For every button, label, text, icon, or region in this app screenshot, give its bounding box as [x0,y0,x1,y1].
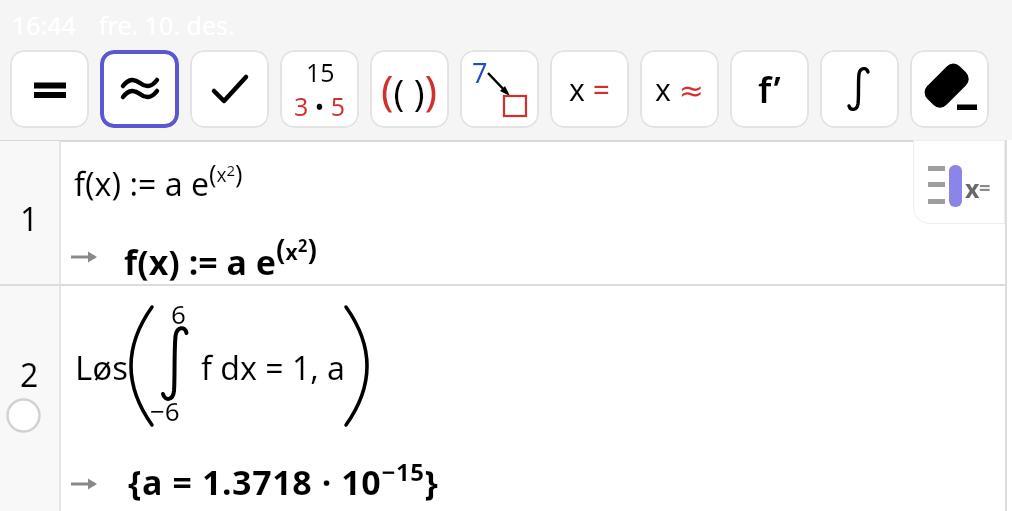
staticText: fre. 10. des. [99,8,235,42]
staticText: = [979,174,991,201]
button[interactable]: x ≈ [640,50,719,128]
staticText: 7 [472,54,488,91]
button[interactable] [10,50,89,128]
button[interactable] [820,50,899,128]
button[interactable] [61,141,1005,284]
staticText: Løs [75,345,129,390]
staticText: x [965,171,980,205]
staticText: f’ [758,65,781,114]
staticText: (( )) [381,61,438,118]
staticText: 15 [306,55,335,89]
staticText: 1 [20,197,39,241]
button[interactable]: 15 [280,50,359,128]
button[interactable]: (( )) [370,50,449,128]
button[interactable]: x [913,140,1005,224]
staticText: 2 [20,353,39,397]
button[interactable] [61,285,1005,511]
button[interactable] [190,50,269,128]
button[interactable]: x = [550,50,629,128]
staticText: −6 [150,393,180,428]
staticText: f dx = 1, a [201,346,346,390]
staticText: f(x) := a e(x2) [124,230,317,285]
button[interactable]: 7 [460,50,539,128]
staticText: 6 [171,296,186,331]
button[interactable] [910,50,989,128]
staticText: 3 • 5 [294,89,346,123]
button[interactable]: f’ [730,50,809,128]
staticText: x = [569,69,610,110]
button[interactable] [100,50,179,128]
staticText: {a = 1.3718 · 10−15} [128,455,439,505]
staticText: 16:44 [12,8,76,42]
staticText: x ≈ [655,69,704,110]
staticText: f(x) := a e(x2) [74,156,243,205]
button[interactable] [5,397,42,434]
